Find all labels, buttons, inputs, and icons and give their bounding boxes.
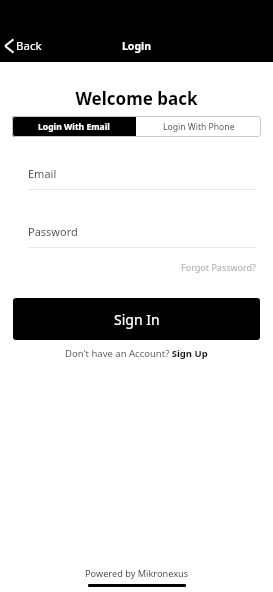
button[interactable]: Back bbox=[2, 36, 44, 56]
staticText: Back bbox=[16, 38, 42, 54]
button[interactable]: Don't have an Account? Sign Up bbox=[65, 347, 208, 360]
staticText: Login With Phone bbox=[163, 121, 235, 133]
staticText: Login With Email bbox=[38, 121, 110, 133]
button[interactable]: Password bbox=[28, 224, 256, 248]
button[interactable]: Email bbox=[28, 166, 256, 190]
staticText: Powered by Mikronexus bbox=[85, 567, 189, 580]
staticText: Sign In bbox=[114, 310, 160, 329]
staticText: Login bbox=[122, 39, 152, 53]
staticText: Email bbox=[28, 166, 57, 181]
button[interactable]: Login With Phone bbox=[136, 116, 261, 137]
button[interactable]: Sign In bbox=[13, 298, 260, 340]
button[interactable]: Forgot Password? bbox=[28, 261, 256, 273]
staticText: Welcome back bbox=[0, 87, 273, 110]
button[interactable]: Login With Email bbox=[12, 116, 136, 137]
staticText: Password bbox=[28, 224, 78, 239]
